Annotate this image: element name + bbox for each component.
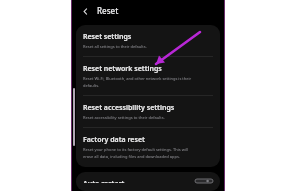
button[interactable]: Factory data reset [76,128,220,167]
staticText: Reset Wi-Fi, Bluetooth, and other networ… [83,76,192,88]
button[interactable]: Auto restart toggle [195,179,213,183]
staticText: Auto restart [83,179,125,183]
staticText: Reset accessibility settings to their de… [83,115,165,120]
staticText: Reset network settings [83,64,162,74]
button[interactable]: Reset network settings [76,57,220,95]
staticText: Reset [97,5,119,16]
button[interactable]: Auto restart [76,172,220,191]
staticText: Reset accessibility settings [83,103,175,113]
button[interactable]: Back [78,4,92,18]
staticText: Reset your phone to its factory default … [83,147,188,159]
staticText: Reset all settings to their defaults. [83,44,147,49]
staticText: Factory data reset [83,135,145,145]
button[interactable]: Reset settings [76,25,220,56]
button[interactable]: Reset accessibility settings [76,96,220,127]
staticText: Reset settings [83,32,132,42]
